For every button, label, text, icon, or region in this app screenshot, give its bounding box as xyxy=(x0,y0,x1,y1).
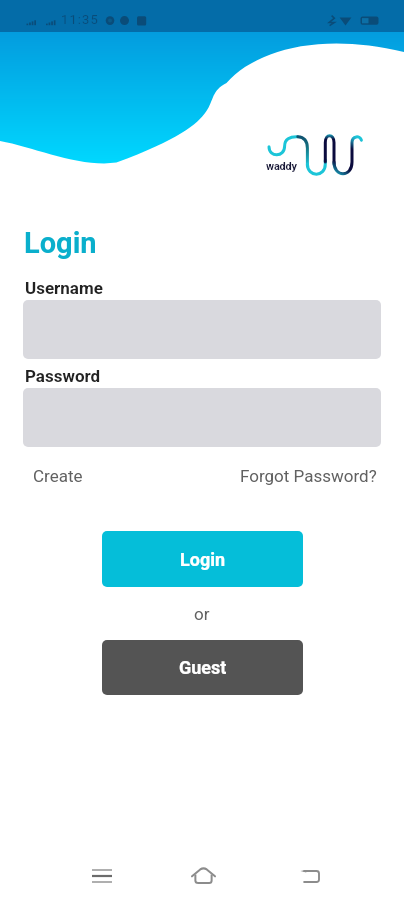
staticText: Password xyxy=(25,366,101,386)
staticText: Guest xyxy=(179,657,227,678)
staticText: Login xyxy=(24,226,97,260)
button[interactable]: Recent apps xyxy=(76,852,128,900)
button[interactable]: Forgot Password? xyxy=(240,466,377,486)
button[interactable]: Guest xyxy=(102,640,303,695)
staticText: Login xyxy=(180,549,226,570)
button[interactable]: Home xyxy=(177,852,229,900)
staticText: 11:35 xyxy=(61,12,99,27)
staticText: or xyxy=(194,604,210,624)
staticText: Username xyxy=(25,278,103,298)
button[interactable]: Login xyxy=(102,531,303,587)
staticText: Forgot Password? xyxy=(240,466,377,486)
button[interactable]: Create xyxy=(33,466,83,486)
staticText: waddy xyxy=(266,160,297,173)
button[interactable]: Back xyxy=(283,852,335,900)
staticText: Create xyxy=(33,466,83,486)
